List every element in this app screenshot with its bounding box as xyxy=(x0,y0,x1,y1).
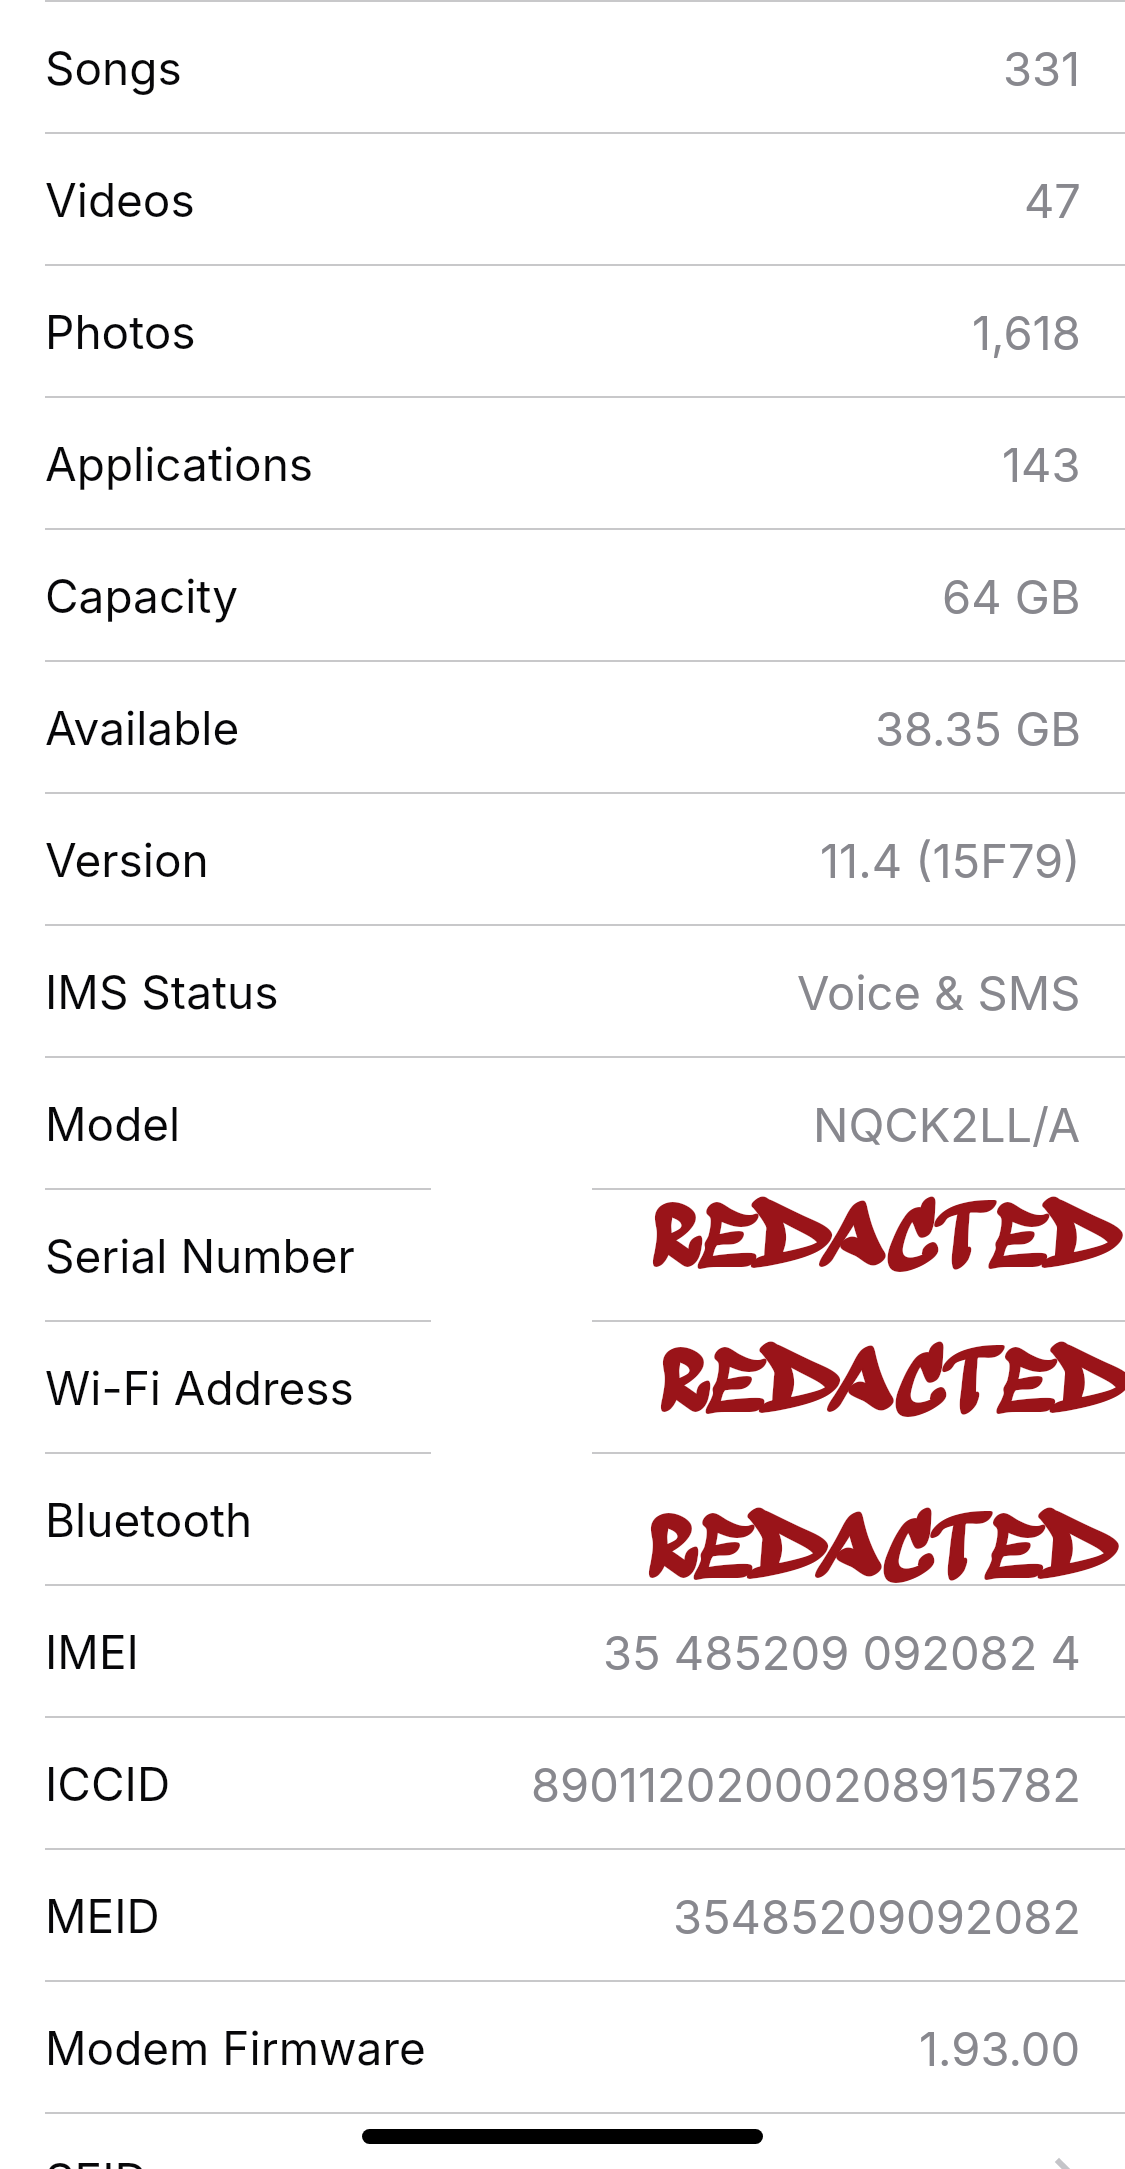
staticText: Applications xyxy=(45,436,314,492)
staticText: 35485209092082 xyxy=(673,1888,1081,1945)
staticText: Photos xyxy=(45,304,196,360)
staticText: Voice & SMS xyxy=(797,964,1081,1021)
staticText: 11.4 (15F79) xyxy=(820,832,1081,889)
staticText: SEID xyxy=(45,2152,148,2169)
staticText: REDACTED xyxy=(659,1335,1125,1442)
staticText: MEID xyxy=(45,1888,160,1944)
button[interactable]: Version xyxy=(0,794,1125,926)
staticText: Songs xyxy=(45,40,182,96)
staticText: 89011202000208915782 xyxy=(531,1756,1081,1813)
staticText: 35 485209 092082 4 xyxy=(603,1624,1081,1681)
button[interactable]: Serial Number xyxy=(0,1190,1125,1322)
staticText: REDACTED xyxy=(661,1333,1125,1440)
staticText: 47 xyxy=(1024,172,1081,229)
staticText: Wi-Fi Address xyxy=(45,1360,354,1416)
button[interactable]: MEID xyxy=(0,1850,1125,1982)
staticText: Available xyxy=(45,700,240,756)
button[interactable]: Photos xyxy=(0,266,1125,398)
button[interactable]: Available xyxy=(0,662,1125,794)
button[interactable]: ICCID xyxy=(0,1718,1125,1850)
button[interactable]: Model xyxy=(0,1058,1125,1190)
staticText: REDACTED xyxy=(653,1188,1120,1295)
button[interactable]: Modem Firmware xyxy=(0,1982,1125,2114)
staticText: Bluetooth xyxy=(45,1492,253,1548)
staticText: IMEI xyxy=(45,1624,139,1680)
staticText: Capacity xyxy=(45,568,239,624)
staticText: Modem Firmware xyxy=(45,2020,426,2076)
staticText: Videos xyxy=(45,172,195,228)
staticText: 64 GB xyxy=(942,568,1081,625)
button[interactable]: SEID xyxy=(0,2114,1125,2169)
staticText: NQCK2LL/A xyxy=(813,1096,1081,1153)
button[interactable]: Applications xyxy=(0,398,1125,530)
button[interactable]: IMEI xyxy=(0,1586,1125,1718)
staticText: REDACTED xyxy=(647,1501,1114,1608)
button[interactable]: Songs xyxy=(0,2,1125,134)
other: Show SEID details xyxy=(1055,2158,1081,2169)
button[interactable]: IMS Status xyxy=(0,926,1125,1058)
button[interactable]: Capacity xyxy=(0,530,1125,662)
staticText: 1.93.00 xyxy=(919,2020,1081,2077)
staticText: Version xyxy=(45,832,209,888)
staticText: 38.35 GB xyxy=(875,700,1081,757)
button[interactable]: Videos xyxy=(0,134,1125,266)
button[interactable]: Wi-Fi Address xyxy=(0,1322,1125,1454)
staticText: ICCID xyxy=(45,1756,171,1812)
staticText: Model xyxy=(45,1096,181,1152)
staticText: IMS Status xyxy=(45,964,279,1020)
staticText: 143 xyxy=(1002,436,1081,493)
staticText: 1,618 xyxy=(972,304,1081,361)
button[interactable]: Bluetooth xyxy=(0,1454,1125,1586)
staticText: REDACTED xyxy=(651,1190,1118,1297)
staticText: 331 xyxy=(1003,40,1081,97)
staticText: REDACTED xyxy=(649,1499,1116,1606)
staticText: Serial Number xyxy=(45,1228,355,1284)
